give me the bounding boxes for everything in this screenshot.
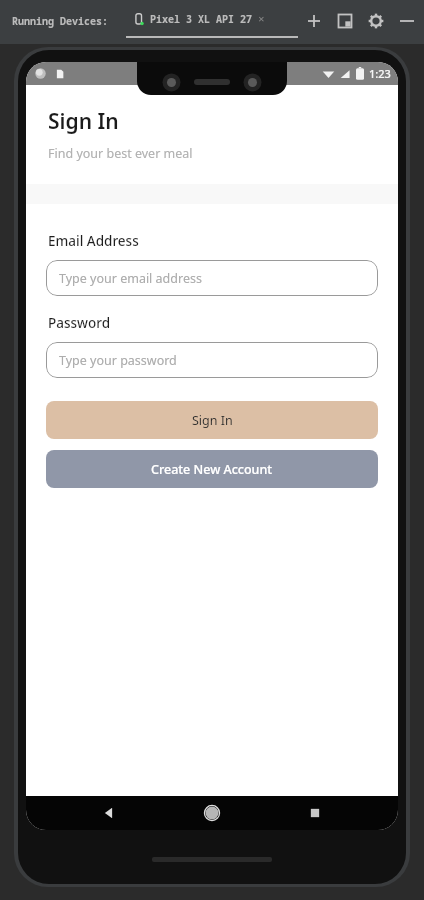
button[interactable]: Back	[96, 800, 122, 826]
staticText: Running Devices:	[12, 14, 108, 28]
staticText: 1:23	[369, 66, 391, 81]
button[interactable]: Type your password	[46, 342, 378, 378]
staticText: Find your best ever meal	[48, 145, 193, 162]
button[interactable]: Create New Account	[46, 450, 378, 488]
staticText: Type your email address	[59, 270, 202, 287]
button[interactable]: Settings	[368, 13, 384, 29]
staticText: Email Address	[48, 232, 139, 250]
button[interactable]: Sign In	[46, 401, 378, 439]
staticText: Sign In	[48, 107, 119, 136]
staticText: Sign In	[192, 412, 233, 429]
staticText: ×	[258, 11, 265, 26]
button[interactable]: Type your email address	[46, 260, 378, 296]
button[interactable]: Recents	[302, 800, 328, 826]
button[interactable]: Add	[306, 13, 322, 29]
button[interactable]: Layout	[337, 13, 353, 29]
button[interactable]: Home	[199, 800, 225, 826]
staticText: Type your password	[59, 352, 177, 369]
button[interactable]: Minimize	[399, 13, 415, 29]
staticText: Password	[48, 314, 111, 332]
button[interactable]: Pixel 3 XL API 27 device tab	[132, 11, 265, 26]
staticText: Create New Account	[151, 461, 273, 478]
staticText: Pixel 3 XL API 27	[150, 12, 252, 26]
